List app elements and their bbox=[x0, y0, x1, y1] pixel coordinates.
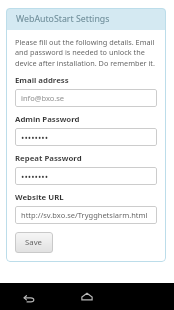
staticText: Repeat Password bbox=[15, 153, 82, 164]
button[interactable]: •••••••• bbox=[15, 167, 157, 185]
staticText: Email address bbox=[15, 75, 69, 86]
staticText: http://sv.bxo.se/Trygghetslarm.html bbox=[21, 210, 148, 220]
button[interactable]: http://sv.bxo.se/Trygghetslarm.html bbox=[15, 206, 157, 224]
staticText: •••••••• bbox=[21, 170, 49, 182]
button[interactable]: info@bxo.se bbox=[15, 89, 157, 107]
button[interactable]: Back bbox=[0, 283, 58, 310]
staticText: info@bxo.se bbox=[21, 93, 65, 103]
button[interactable]: Home bbox=[58, 283, 116, 310]
button[interactable]: •••••••• bbox=[15, 128, 157, 146]
staticText: Admin Password bbox=[15, 114, 80, 125]
staticText: •••••••• bbox=[21, 131, 49, 143]
staticText: Save bbox=[25, 237, 43, 248]
staticText: Please fill out the following details. E… bbox=[15, 37, 157, 68]
staticText: Website URL bbox=[15, 192, 64, 203]
staticText: WebAutoStart Settings bbox=[16, 13, 110, 25]
button[interactable]: Save bbox=[15, 232, 53, 253]
